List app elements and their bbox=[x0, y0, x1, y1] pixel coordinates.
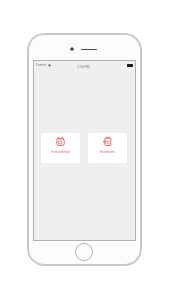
staticText: Fence Entry bbox=[51, 149, 70, 154]
staticText: Incidents bbox=[100, 149, 115, 154]
button[interactable]: Incidents bbox=[88, 133, 127, 163]
other: Incidents bbox=[103, 137, 112, 146]
staticText: Carrier bbox=[36, 63, 47, 67]
staticText: 2:34 PM bbox=[77, 64, 90, 68]
button[interactable]: Fence Entry bbox=[41, 133, 80, 163]
other: Fence Entry bbox=[56, 137, 65, 146]
